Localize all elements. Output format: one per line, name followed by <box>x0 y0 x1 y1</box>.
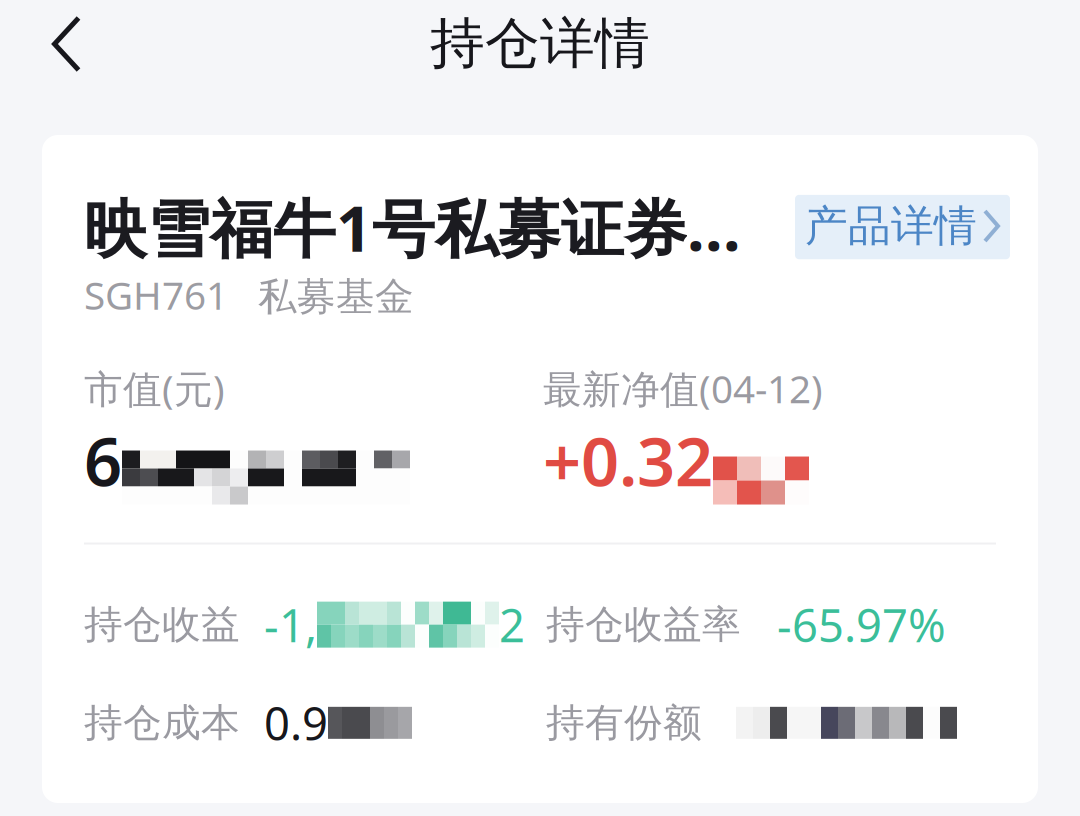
staticText: 产品详情 <box>805 200 977 252</box>
staticText: -1, <box>240 594 317 655</box>
staticText: 映雪福牛1号私募证券投资... <box>84 185 771 269</box>
staticText: 持仓成本 <box>84 699 240 747</box>
staticText: 持有份额 <box>546 699 702 747</box>
staticText: 持仓收益率 <box>546 601 741 648</box>
staticText: 持仓详情 <box>430 10 650 77</box>
button[interactable]: 产品详情 <box>795 195 1010 259</box>
staticText: +0.32 <box>543 416 713 504</box>
staticText: 6 <box>84 416 122 504</box>
staticText: -65.97% <box>741 594 946 655</box>
button[interactable]: Back <box>0 0 134 88</box>
staticText: 市值(元) <box>84 363 225 414</box>
staticText: 持仓收益 <box>84 601 240 648</box>
staticText: 0.9 <box>240 693 328 753</box>
staticText: SGH761 私募基金 <box>84 269 414 321</box>
staticText: 2 <box>499 594 525 655</box>
staticText: 最新净值(04-12) <box>543 363 823 414</box>
